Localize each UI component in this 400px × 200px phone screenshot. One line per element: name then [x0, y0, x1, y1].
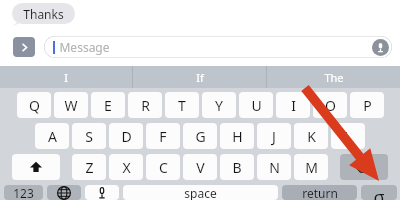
button[interactable]: 123 — [4, 185, 43, 200]
staticText: A — [48, 127, 57, 146]
button[interactable]: Z — [72, 154, 106, 180]
staticText: H — [232, 127, 243, 146]
staticText: return — [302, 185, 338, 200]
button[interactable]: O — [313, 92, 347, 118]
staticText: Q — [29, 96, 40, 115]
button[interactable]: Thanks — [12, 3, 75, 24]
staticText: I — [291, 96, 296, 115]
button[interactable]: K — [294, 123, 328, 149]
button[interactable]: Y — [202, 92, 236, 118]
staticText: C — [159, 158, 168, 177]
button[interactable]: B — [220, 154, 254, 180]
staticText: O — [325, 96, 336, 115]
button[interactable]: T — [165, 92, 199, 118]
staticText: Message — [59, 39, 110, 55]
staticText: G — [195, 127, 206, 146]
button[interactable]: Switch keyboard — [47, 185, 81, 200]
button[interactable]: U — [239, 92, 273, 118]
button[interactable]: I — [0, 66, 132, 88]
button[interactable]: E — [91, 92, 125, 118]
button[interactable]: S — [72, 123, 106, 149]
button[interactable]: return — [282, 185, 357, 200]
staticText: V — [196, 158, 205, 177]
button[interactable]: A — [35, 123, 69, 149]
button[interactable]: space — [123, 185, 278, 200]
button[interactable]: Shift — [12, 154, 60, 180]
button[interactable]: The — [267, 66, 400, 88]
button[interactable]: W — [54, 92, 88, 118]
staticText: W — [64, 96, 78, 115]
staticText: X — [122, 158, 131, 177]
staticText: D — [121, 127, 132, 146]
staticText: S — [85, 127, 93, 146]
staticText: E — [104, 96, 112, 115]
staticText: 123 — [13, 185, 34, 200]
staticText: F — [159, 127, 167, 146]
staticText: U — [251, 96, 262, 115]
button[interactable]: Handwriting — [361, 185, 397, 200]
staticText: If — [196, 70, 204, 85]
button[interactable]: P — [350, 92, 384, 118]
button[interactable]: N — [257, 154, 291, 180]
staticText: P — [363, 96, 372, 115]
button[interactable]: If — [133, 66, 266, 88]
staticText: M — [305, 158, 318, 177]
staticText: L — [344, 127, 352, 146]
button[interactable]: Dictate message — [372, 39, 389, 56]
staticText: I — [64, 70, 68, 85]
button[interactable]: Dictation — [85, 185, 119, 200]
button[interactable]: Message — [44, 36, 392, 58]
button[interactable]: I — [276, 92, 310, 118]
staticText: Z — [85, 158, 94, 177]
staticText: The — [324, 70, 344, 85]
staticText: R — [141, 96, 150, 115]
staticText: T — [178, 96, 186, 115]
button[interactable]: M — [294, 154, 328, 180]
staticText: N — [269, 158, 280, 177]
button[interactable]: Expand apps — [13, 37, 35, 57]
button[interactable]: V — [183, 154, 217, 180]
staticText: σ — [373, 185, 385, 200]
button[interactable]: G — [183, 123, 217, 149]
button[interactable]: D — [109, 123, 143, 149]
button[interactable]: L — [331, 123, 365, 149]
button[interactable]: J — [257, 123, 291, 149]
button[interactable]: R — [128, 92, 162, 118]
staticText: K — [307, 127, 316, 146]
button[interactable]: Q — [17, 92, 51, 118]
staticText: Thanks — [23, 6, 64, 22]
staticText: B — [232, 158, 242, 177]
staticText: space — [184, 185, 217, 200]
staticText: Y — [215, 96, 223, 115]
button[interactable]: X — [109, 154, 143, 180]
staticText: J — [272, 127, 276, 146]
button[interactable]: C — [146, 154, 180, 180]
button[interactable]: F — [146, 123, 180, 149]
button[interactable]: H — [220, 123, 254, 149]
button[interactable]: Backspace — [340, 154, 388, 180]
